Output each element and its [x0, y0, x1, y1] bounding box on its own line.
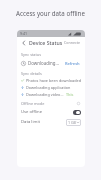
staticText: Downloading… — [28, 60, 59, 66]
staticText: Downloading application data… — [26, 85, 81, 90]
staticText: Access your data offline — [16, 9, 85, 17]
button[interactable]: Refresh — [64, 60, 81, 67]
staticText: Data limit — [21, 119, 41, 125]
button[interactable]: Downloading… — [17, 58, 85, 68]
button[interactable]: Photos have been downloaded — [17, 77, 85, 84]
staticText: Device Status — [29, 39, 63, 46]
staticText: Refresh — [65, 61, 80, 66]
staticText: This may take a while — [66, 92, 81, 97]
staticText: Sync status — [21, 52, 42, 57]
staticText: Connected — [64, 40, 81, 45]
staticText: Sync details — [21, 71, 42, 76]
button[interactable]: Downloading application data… — [17, 84, 85, 91]
staticText: 9:41 — [20, 31, 28, 36]
staticText: Photos have been downloaded — [26, 78, 81, 83]
staticText: Offline mode — [21, 101, 45, 106]
button[interactable]: More info — [76, 101, 81, 106]
button[interactable]: 1 GB — [66, 119, 81, 126]
staticText: Use offline — [21, 109, 43, 115]
button[interactable]: Data limit — [17, 117, 85, 127]
button[interactable]: Back — [20, 39, 27, 46]
button[interactable]: Downloading video… — [17, 91, 85, 98]
button[interactable]: Use offline — [17, 107, 85, 117]
staticText: Downloading video… — [26, 92, 64, 97]
staticText: 1 GB — [68, 120, 76, 125]
button[interactable]: Connected — [63, 39, 82, 46]
